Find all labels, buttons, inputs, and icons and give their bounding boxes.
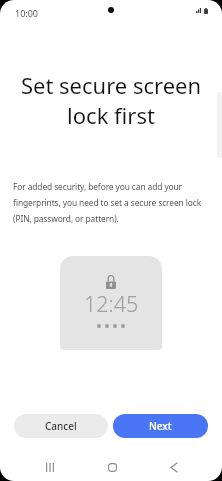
button[interactable]: Next [113,414,208,438]
staticText: Next [149,419,172,433]
button[interactable]: Recents [32,453,68,481]
staticText: Set secure screen lock first [0,70,222,130]
button[interactable]: Back [156,453,192,481]
button[interactable]: Cancel [14,414,108,438]
staticText: 12:45 [84,289,139,318]
staticText: Cancel [45,419,77,433]
staticText: 10:00 [15,7,39,19]
button[interactable]: Home [94,453,130,481]
staticText: For added security, before you can add y… [13,181,222,224]
